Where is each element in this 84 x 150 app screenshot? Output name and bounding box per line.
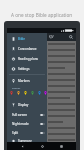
button[interactable]: Settings bbox=[7, 64, 47, 73]
staticText: KJV bbox=[49, 35, 54, 39]
button[interactable]: Marker colour bbox=[15, 90, 22, 96]
staticText: Night mode bbox=[12, 122, 29, 126]
staticText: Split bbox=[12, 131, 19, 135]
button[interactable]: Back bbox=[18, 142, 26, 150]
button[interactable]: Home bbox=[38, 142, 46, 150]
staticText: Summary bbox=[18, 139, 32, 143]
button[interactable]: Marker colour bbox=[8, 90, 15, 96]
button[interactable]: Markers bbox=[7, 76, 47, 85]
staticText: Reading plans bbox=[18, 57, 38, 61]
button[interactable]: Night mode bbox=[7, 119, 47, 128]
button[interactable]: Marker colour bbox=[43, 90, 48, 96]
staticText: Bible bbox=[18, 37, 26, 41]
button[interactable]: Marker colour bbox=[29, 90, 36, 96]
button[interactable]: Marker colour bbox=[36, 90, 43, 96]
button[interactable]: Summary bbox=[7, 136, 47, 145]
staticText: A one stop Bible application bbox=[11, 12, 73, 18]
staticText: Settings bbox=[18, 67, 30, 71]
button[interactable]: Bible bbox=[7, 34, 47, 43]
button[interactable]: Display bbox=[7, 100, 47, 109]
button[interactable]: Concordance bbox=[7, 44, 47, 53]
staticText: Concordance bbox=[18, 47, 37, 51]
staticText: Markers bbox=[18, 79, 30, 83]
button[interactable]: Reading plans bbox=[7, 54, 47, 63]
staticText: Display bbox=[18, 103, 29, 107]
staticText: Display bbox=[12, 86, 21, 89]
button[interactable]: Split bbox=[7, 128, 47, 137]
staticText: Full screen bbox=[12, 113, 28, 117]
button[interactable]: Marker colour bbox=[22, 90, 29, 96]
button[interactable]: Search bbox=[68, 34, 74, 40]
button[interactable]: Full screen bbox=[7, 110, 47, 119]
button[interactable]: Recents bbox=[57, 142, 65, 150]
